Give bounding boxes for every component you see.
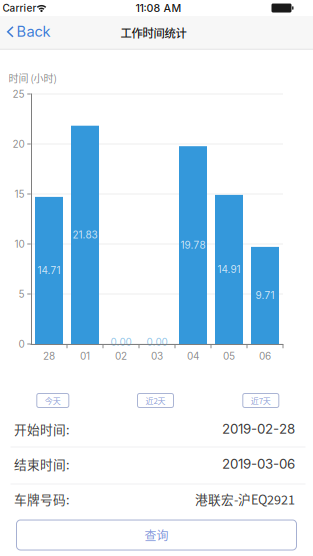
staticText: 11:08 AM bbox=[135, 1, 181, 14]
staticText: Carrier bbox=[2, 2, 36, 14]
staticText: 5 bbox=[18, 288, 24, 300]
button[interactable]: 查询 bbox=[16, 520, 296, 550]
staticText: 9.71 bbox=[255, 289, 274, 301]
staticText: 开始时间: bbox=[14, 420, 70, 438]
staticText: 0.00 bbox=[110, 336, 131, 348]
staticText: 19.78 bbox=[180, 239, 205, 251]
staticText: 工作时间统计 bbox=[120, 24, 186, 41]
button[interactable]: 今天 bbox=[37, 393, 69, 407]
staticText: 10 bbox=[14, 238, 24, 250]
staticText: 查询 bbox=[144, 526, 168, 544]
staticText: 21.83 bbox=[72, 229, 97, 241]
staticText: 车牌号码: bbox=[14, 490, 70, 508]
staticText: 05 bbox=[223, 350, 235, 362]
staticText: 近2天 bbox=[145, 395, 165, 406]
staticText: 近7天 bbox=[251, 395, 271, 406]
staticText: 2019-02-28 bbox=[222, 421, 295, 437]
staticText: 20 bbox=[12, 138, 24, 150]
staticText: 今天 bbox=[45, 395, 61, 406]
button[interactable]: 近2天 bbox=[137, 393, 173, 407]
staticText: 03 bbox=[151, 350, 163, 362]
staticText: 港联宏-沪EQ2921 bbox=[195, 490, 295, 508]
staticText: Back bbox=[16, 23, 50, 40]
staticText: 14.91 bbox=[217, 263, 240, 275]
staticText: 25 bbox=[12, 88, 24, 100]
staticText: 0.00 bbox=[146, 336, 167, 348]
staticText: 14.71 bbox=[37, 264, 60, 276]
staticText: 15 bbox=[14, 188, 24, 200]
staticText: 结束时间: bbox=[14, 455, 70, 473]
staticText: 01 bbox=[80, 350, 90, 362]
staticText: 2019-03-06 bbox=[222, 456, 295, 472]
button[interactable]: Back bbox=[6, 16, 62, 46]
staticText: 06 bbox=[259, 350, 271, 362]
staticText: 28 bbox=[43, 350, 55, 362]
staticText: 时间 (小时) bbox=[8, 71, 56, 85]
button[interactable]: 近7天 bbox=[243, 393, 279, 407]
staticText: 04 bbox=[187, 350, 199, 362]
staticText: 0 bbox=[18, 338, 24, 350]
staticText: 02 bbox=[115, 350, 127, 362]
